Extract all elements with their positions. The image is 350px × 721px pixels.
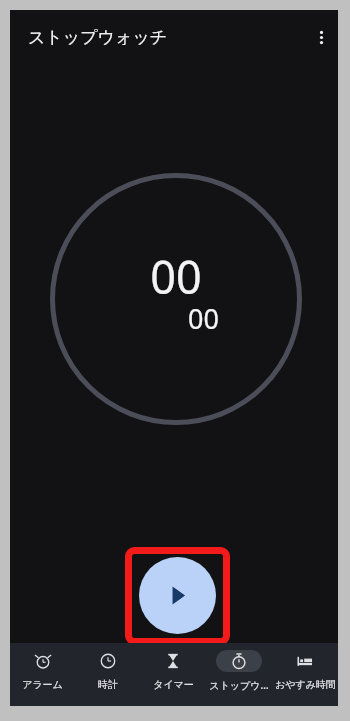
button[interactable]: アラーム: [10, 643, 75, 706]
staticText: おやすみ時間: [275, 678, 336, 691]
staticText: アラーム: [22, 678, 63, 691]
staticText: 00: [188, 300, 219, 337]
staticText: ストップウ…: [209, 678, 269, 692]
staticText: ストップウォッチ: [28, 27, 168, 48]
button[interactable]: Start stopwatch: [139, 557, 216, 634]
button[interactable]: おやすみ時間: [272, 643, 338, 706]
button[interactable]: タイマー: [140, 643, 206, 706]
button[interactable]: 時計: [75, 643, 140, 706]
staticText: 00: [150, 246, 202, 307]
staticText: 時計: [98, 678, 118, 691]
staticText: タイマー: [153, 678, 194, 691]
button[interactable]: ストップウ…: [206, 643, 272, 706]
button[interactable]: More options: [309, 25, 333, 49]
